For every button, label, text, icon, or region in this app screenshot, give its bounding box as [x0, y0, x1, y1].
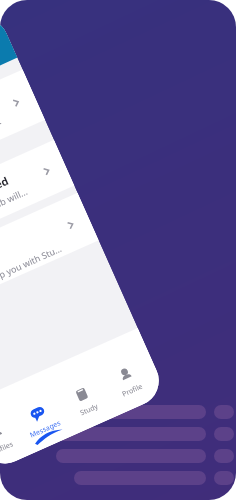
staticText: Profile	[121, 381, 145, 399]
staticText: Maintenance Planned	[0, 173, 11, 235]
staticText: On Sunday the Study Hub will...	[0, 185, 30, 250]
button[interactable]: Study	[52, 367, 117, 434]
button[interactable]: Profile	[96, 348, 161, 415]
button[interactable]: Welcome	[0, 69, 45, 198]
button[interactable]: Your Receipt	[0, 193, 99, 318]
button[interactable]: Profiles	[0, 406, 30, 471]
staticText: Our team can help you with Study ...	[0, 240, 66, 310]
staticText: Study	[79, 401, 100, 418]
staticText: Profiles	[0, 439, 15, 458]
button[interactable]: Messages	[8, 387, 73, 454]
staticText: Messages	[28, 418, 63, 441]
staticText: Check your classes, exams and...	[0, 114, 4, 181]
button[interactable]: Maintenance Planned	[0, 140, 74, 264]
